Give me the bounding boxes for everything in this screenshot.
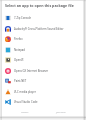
button[interactable]: Opera GX Internet Browser [2, 65, 83, 76]
button[interactable]: Always [19, 109, 31, 116]
button[interactable]: Audacity® Cross-Platform Sound Editor [2, 23, 83, 34]
staticText: Firefox [14, 37, 23, 41]
button[interactable]: Paint.NET [2, 75, 83, 86]
staticText: OpenVI [14, 58, 24, 62]
staticText: VLC media player [14, 90, 36, 94]
staticText: Visual Studio Code [14, 100, 38, 104]
button[interactable]: 7-Zip Console [2, 12, 83, 23]
button[interactable]: OpenVI [2, 54, 83, 65]
button[interactable]: VLC media player [2, 86, 83, 97]
button[interactable]: Visual Studio Code [2, 96, 83, 107]
button[interactable]: Notepad [2, 44, 83, 55]
staticText: Always [21, 111, 29, 114]
staticText: Notepad [14, 48, 25, 52]
staticText: Just once [56, 111, 66, 114]
button[interactable]: Just once [54, 109, 68, 116]
staticText: 7-Zip Console [14, 16, 32, 20]
staticText: Opera GX Internet Browser [14, 69, 49, 73]
staticText: Select an app to open this package file [5, 3, 74, 8]
button[interactable]: Firefox [2, 33, 83, 44]
staticText: Paint.NET [14, 79, 27, 83]
staticText: Audacity® Cross-Platform Sound Editor [14, 27, 64, 31]
